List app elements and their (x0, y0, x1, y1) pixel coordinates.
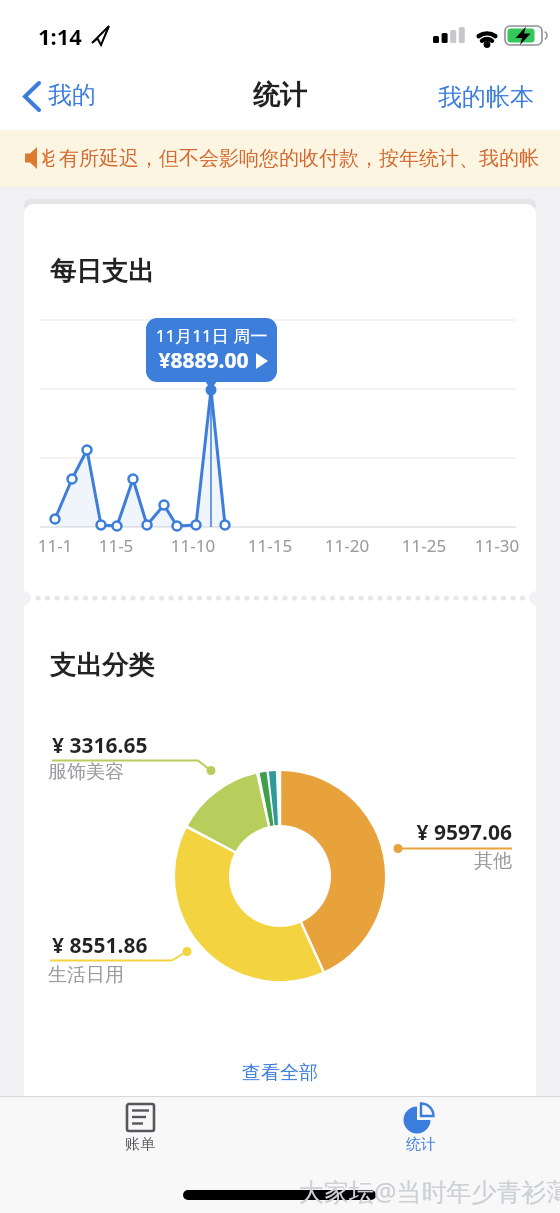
staticText: 11-30 (467, 534, 527, 557)
staticText: 我的帐本 (438, 82, 534, 112)
staticText: 11-15 (240, 534, 300, 557)
staticText: 查看全部 (230, 1061, 330, 1085)
staticText: 11月11日 周一 (146, 324, 277, 347)
staticText: 账单 (80, 1135, 200, 1154)
staticText: 大家坛@当时年少青衫薄 (299, 1174, 560, 1208)
staticText: ¥ 8551.86 (52, 931, 148, 960)
button[interactable]: 查看全部 (230, 1061, 330, 1093)
staticText: 生活日用 (48, 963, 124, 987)
staticText: 11-10 (163, 534, 223, 557)
staticText: 11-20 (317, 534, 377, 557)
staticText: 服饰美容 (48, 760, 124, 784)
staticText: 支出分类 (50, 649, 154, 682)
staticText: 1:14 (38, 21, 82, 51)
staticText: 我的 (48, 80, 96, 110)
button[interactable]: 我的帐本 (430, 70, 544, 120)
staticText: 统计 (0, 78, 560, 112)
staticText: 统计 (361, 1135, 481, 1154)
staticText: 11-25 (394, 534, 454, 557)
staticText: 每日支出 (50, 255, 154, 288)
button[interactable]: 账单 (80, 1096, 200, 1166)
staticText: 11-1 (25, 534, 85, 557)
button[interactable] (0, 130, 560, 187)
button[interactable]: 统计 (361, 1096, 481, 1166)
button[interactable]: 我的 (16, 70, 106, 120)
staticText: 11-5 (86, 534, 146, 557)
staticText: 有所延迟，但不会影响您的收付款，按年统计、我的帐 (59, 146, 539, 171)
staticText: 其他 (392, 849, 512, 873)
staticText: ¥8889.00 (146, 346, 269, 375)
button[interactable]: 11月11日 周一 (146, 318, 277, 382)
staticText: ¥ 3316.65 (52, 731, 148, 760)
staticText: ¥ 9597.06 (392, 818, 512, 847)
